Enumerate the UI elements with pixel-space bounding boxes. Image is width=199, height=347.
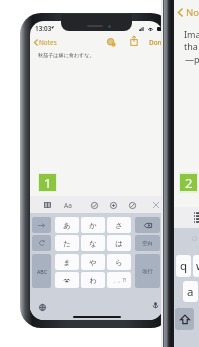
staticText: は [115, 239, 123, 248]
button[interactable]: No [186, 6, 199, 19]
button[interactable]: check [88, 199, 100, 211]
button[interactable]: は [107, 235, 131, 251]
staticText: か [89, 221, 97, 230]
button[interactable]: Share [128, 35, 139, 46]
staticText: tha [184, 40, 198, 52]
button[interactable]: 改行 [135, 254, 160, 288]
button[interactable]: さ [107, 217, 131, 233]
button[interactable]: 、。?! [107, 272, 131, 288]
button[interactable]: Checklist [194, 212, 199, 223]
button[interactable]: ま [55, 254, 79, 270]
button[interactable]: Back to Notes [178, 8, 183, 17]
button[interactable]: q [176, 255, 191, 277]
button[interactable]: Shift [175, 308, 194, 330]
staticText: Notes [39, 38, 57, 47]
button[interactable] [55, 272, 79, 288]
button[interactable]: ら [107, 254, 131, 270]
staticText: な [89, 239, 97, 248]
staticText: 空白 [142, 240, 153, 247]
staticText: や [89, 258, 97, 267]
button[interactable]: わ [81, 272, 105, 288]
button[interactable]: Collaborate [106, 37, 117, 48]
button[interactable]: 1 [39, 174, 56, 191]
staticText: 、。?! [113, 277, 126, 283]
staticText: w [196, 258, 199, 274]
button[interactable]: Done [149, 38, 163, 47]
staticText: あ [63, 221, 71, 230]
staticText: ま [63, 258, 71, 267]
button[interactable]: や [81, 254, 105, 270]
staticText: 1 [44, 174, 52, 191]
button[interactable]: w [193, 255, 199, 277]
button[interactable]: あ [55, 217, 79, 233]
button[interactable]: fwd [32, 217, 51, 233]
staticText: た [63, 239, 71, 248]
button[interactable]: pen [126, 199, 138, 211]
button[interactable]: Next keyboard [39, 304, 46, 311]
button[interactable]: Aa [62, 199, 74, 211]
staticText: ABC [37, 268, 47, 275]
button[interactable]: table [41, 199, 53, 211]
button[interactable]: del [135, 217, 160, 233]
button[interactable]: 空白 [135, 235, 160, 251]
button[interactable]: ABC [32, 254, 51, 288]
staticText: q [180, 258, 188, 274]
staticText: 秋茄子は嫁に食わすな。 [38, 52, 95, 58]
staticText: Ima [184, 28, 199, 40]
button[interactable]: な [81, 235, 105, 251]
staticText: a [187, 284, 194, 300]
staticText: ら [115, 258, 123, 267]
button[interactable]: Dictation [152, 302, 159, 309]
button[interactable]: 2 [180, 174, 197, 191]
staticText: わ [89, 276, 97, 285]
button[interactable]: か [81, 217, 105, 233]
button[interactable]: Notes [34, 38, 57, 47]
button[interactable]: a [183, 281, 198, 302]
button[interactable]: た [55, 235, 79, 251]
button[interactable]: plus [107, 199, 119, 211]
button[interactable]: x [150, 199, 162, 211]
staticText: 13:03 [35, 24, 52, 33]
staticText: —p [185, 53, 199, 65]
staticText: 2 [185, 174, 193, 191]
staticText: さ [115, 221, 123, 230]
staticText: Aa [64, 201, 72, 210]
button[interactable]: undo [32, 235, 51, 251]
staticText: 改行 [142, 268, 153, 275]
